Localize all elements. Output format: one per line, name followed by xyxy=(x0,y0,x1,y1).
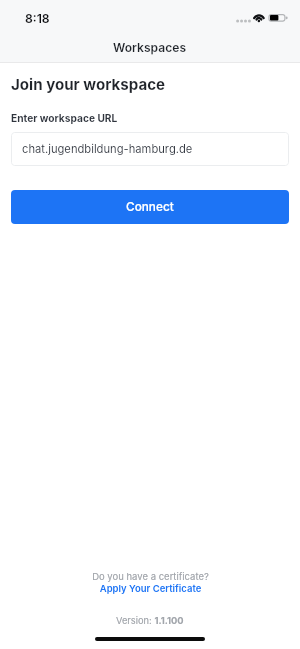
staticText: Connect xyxy=(126,200,174,214)
staticText: Version: 1.1.100 xyxy=(116,615,184,626)
button[interactable]: Connect xyxy=(11,190,289,224)
staticText: Do you have a certificate? Apply Your Ce… xyxy=(92,571,209,595)
staticText: chat.jugendbildung-hamburg.de xyxy=(22,142,193,156)
staticText: Enter workspace URL xyxy=(11,112,118,124)
button[interactable]: chat.jugendbildung-hamburg.de xyxy=(11,132,289,166)
button[interactable]: Do you have a certificate? Apply Your Ce… xyxy=(92,571,209,595)
staticText: 8:18 xyxy=(25,11,50,26)
button[interactable]: Workspaces xyxy=(113,40,187,55)
other: Status icons xyxy=(0,0,300,63)
staticText: Join your workspace xyxy=(11,75,166,93)
